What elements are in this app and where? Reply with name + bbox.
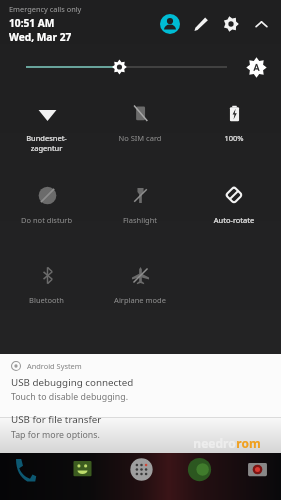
button[interactable]: Edit tiles — [186, 9, 216, 39]
staticText: 10:51 AM — [9, 16, 55, 30]
staticText: Wed, Mar 27 — [9, 30, 72, 44]
button[interactable]: Auto brightness — [243, 54, 269, 80]
button[interactable]: 100% — [187, 92, 281, 143]
staticText: Airplane mode — [93, 295, 187, 305]
button[interactable]: All apps — [125, 453, 157, 485]
button[interactable]: Brightness — [26, 55, 227, 79]
button[interactable]: No SIM card — [93, 92, 187, 143]
button[interactable]: Application — [183, 453, 215, 485]
button[interactable]: Settings — [216, 9, 246, 39]
button[interactable]: User profile — [154, 8, 186, 40]
button[interactable]: Bluetooth — [0, 254, 93, 305]
staticText: No SIM card — [93, 133, 187, 143]
staticText: Do not disturb — [0, 215, 93, 225]
button[interactable]: Messaging — [66, 453, 98, 485]
button[interactable]: Airplane mode — [93, 254, 187, 305]
button[interactable]: Bundesnet- zagentur — [0, 92, 93, 153]
button[interactable]: Collapse panel — [246, 9, 276, 39]
button[interactable]: Do not disturb — [0, 174, 93, 225]
staticText: rom — [236, 435, 261, 451]
staticText: Touch to disable debugging. — [11, 391, 129, 403]
staticText: Auto-rotate — [187, 215, 281, 225]
staticText: Bluetooth — [0, 295, 93, 305]
staticText: Bundesnet- zagentur — [0, 133, 93, 153]
button[interactable]: Flashlight — [93, 174, 187, 225]
staticText: USB debugging connected — [11, 376, 134, 389]
button[interactable]: Android System — [0, 354, 281, 417]
staticText: 100% — [187, 133, 281, 143]
button[interactable]: USB for file transfer — [0, 418, 281, 453]
staticText: Tap for more options. — [11, 429, 100, 441]
staticText: USB for file transfer — [11, 413, 102, 426]
staticText: needro — [193, 435, 236, 451]
button[interactable]: Camera — [241, 453, 273, 485]
staticText: Emergency calls only — [9, 4, 82, 14]
staticText: Android System — [27, 361, 82, 371]
staticText: Flashlight — [93, 215, 187, 225]
button[interactable]: Phone — [8, 453, 40, 485]
button[interactable]: Auto-rotate — [187, 174, 281, 225]
